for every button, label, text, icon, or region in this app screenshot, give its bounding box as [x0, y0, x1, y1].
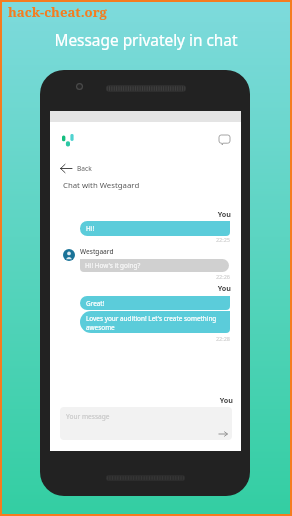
staticText: Message privately in chat — [0, 30, 292, 51]
button[interactable]: Great! — [80, 296, 230, 310]
staticText: 22:28 — [50, 335, 230, 342]
button[interactable]: Hi! How's it going? — [80, 259, 229, 272]
button[interactable]: Back — [60, 164, 92, 173]
staticText: You — [50, 209, 231, 219]
staticText: Back — [77, 164, 92, 173]
staticText: You — [50, 283, 231, 293]
button[interactable]: Send — [218, 430, 228, 438]
staticText: Chat with Westgaard — [63, 180, 140, 191]
button[interactable]: Messages — [216, 132, 234, 150]
button[interactable]: Westgaard avatar — [63, 249, 75, 261]
staticText: Great! — [86, 299, 105, 308]
staticText: Loves your audition! Let's create someth… — [86, 314, 217, 331]
staticText: 22:25 — [50, 236, 230, 243]
staticText: Your message — [66, 412, 110, 421]
button[interactable]: Loves your audition! Let's create someth… — [80, 311, 230, 333]
button[interactable]: Home — [57, 129, 79, 151]
staticText: Hi! How's it going? — [85, 261, 141, 270]
button[interactable]: Your message — [60, 407, 232, 440]
staticText: 22:26 — [50, 273, 230, 280]
button[interactable]: Hi! — [80, 221, 230, 236]
staticText: Hi! — [86, 224, 95, 233]
staticText: You — [50, 395, 233, 405]
staticText: hack-cheat.org — [8, 3, 107, 21]
staticText: Westgaard — [80, 247, 114, 256]
